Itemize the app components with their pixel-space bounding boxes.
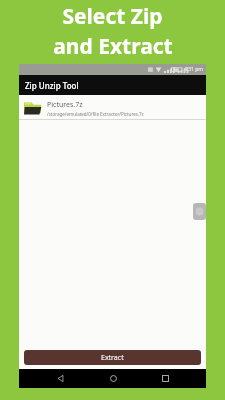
- button[interactable]: Home: [102, 369, 124, 388]
- button[interactable]: Extract: [24, 350, 201, 365]
- staticText: /storage/emulated/0/file Extractor/Pictu…: [47, 111, 144, 117]
- button[interactable]: Back: [49, 369, 71, 388]
- staticText: Pictures.7z: [47, 100, 83, 110]
- button[interactable]: Pictures.7z: [19, 97, 206, 119]
- staticText: 4:31 pm: [184, 66, 203, 73]
- staticText: Zip Unzip Tool: [25, 80, 79, 91]
- staticText: Select Zip: [62, 2, 163, 31]
- other: Scroll: [193, 203, 206, 220]
- staticText: Extract: [101, 353, 124, 363]
- staticText: and Extract: [53, 32, 173, 61]
- button[interactable]: Recents: [154, 369, 176, 388]
